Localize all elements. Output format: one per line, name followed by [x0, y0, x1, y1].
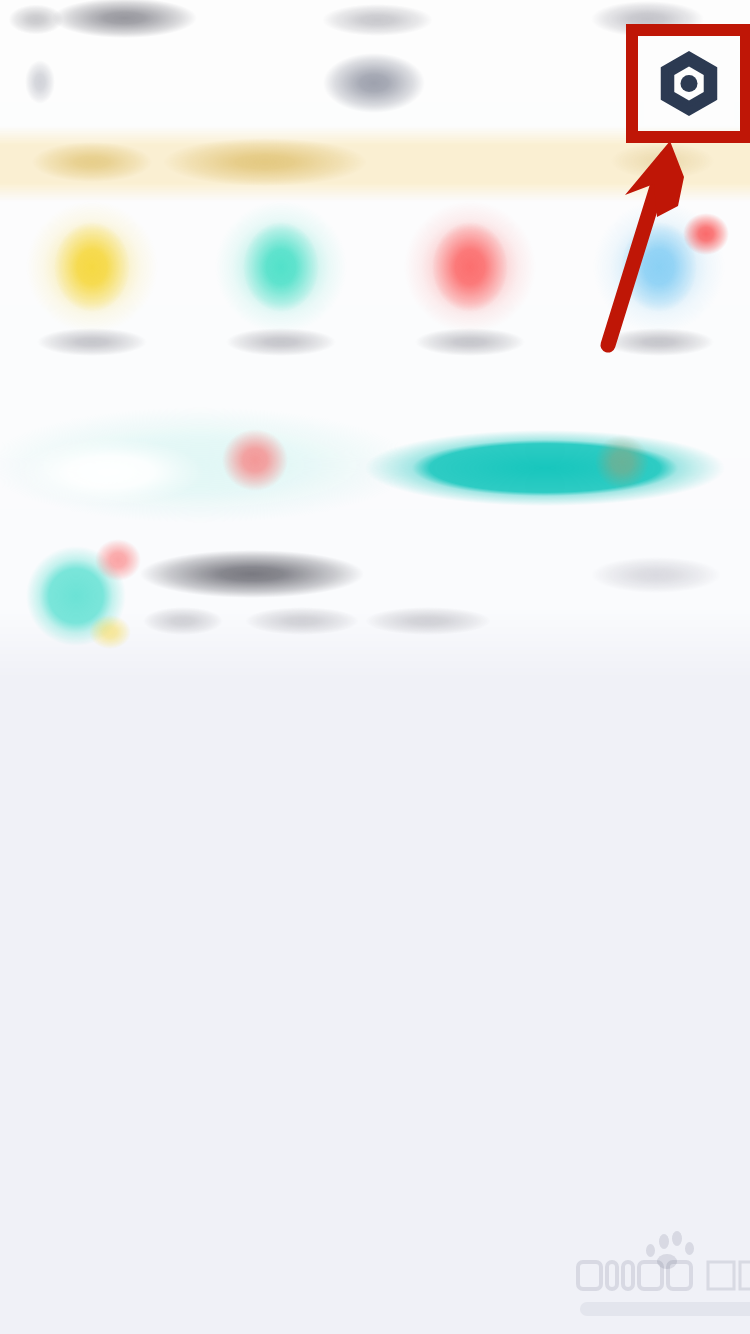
button[interactable]: Settings [0, 0, 750, 1334]
